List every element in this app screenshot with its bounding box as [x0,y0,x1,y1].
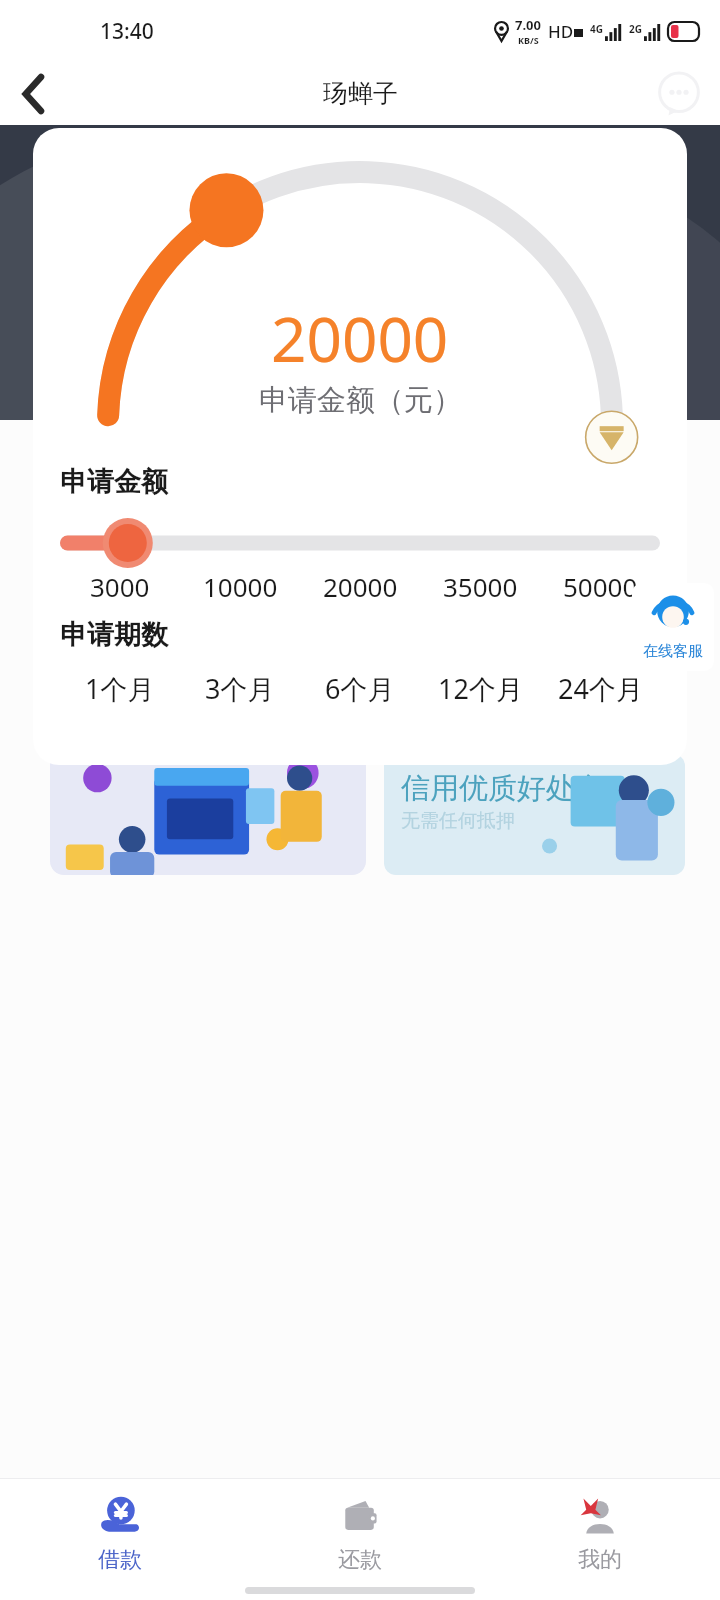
button[interactable] [60,523,660,563]
staticText: 高效 简单 安全 [218,283,424,323]
staticText: 信用优质好处多 [401,770,604,807]
button[interactable]: 1分钟认证 [50,620,366,875]
button[interactable]: 24个月 [540,670,660,707]
button[interactable]: 信用优质好处多 [384,754,685,875]
button[interactable]: 去还款 [58,469,662,545]
staticText: 随时借还 [230,183,490,261]
button[interactable]: 3个月 [180,670,300,707]
staticText: 3000 [90,569,150,604]
staticText: 2G [629,22,642,36]
staticText: 玚蝉子 [323,78,398,109]
staticText: 申请期数 [60,618,168,652]
button[interactable]: More [652,67,706,121]
button[interactable]: 借款 [0,1494,240,1600]
button[interactable]: 6个月 [300,670,420,707]
staticText: 无需任何抵押 [401,809,515,833]
staticText: 产品亮点 [62,569,178,606]
staticText: 50000 [563,569,638,604]
staticText: 6个月 [325,670,395,707]
staticText: 3个月 [205,670,275,707]
staticText: 7.00 [515,16,541,34]
staticText: 申请金额 [60,465,168,499]
staticText: 10000 [203,569,278,604]
staticText: HD [548,20,574,43]
staticText: 20000 [271,296,449,380]
staticText: 十分钟放款 [72,691,177,717]
staticText: 我的 [578,1546,622,1574]
staticText: 1分钟认证 [72,644,214,686]
staticText: 提前还款，无违约金 [401,675,572,699]
staticText: 还款 [338,1546,382,1574]
staticText: 13:40 [100,17,154,46]
staticText: 35000 [443,569,518,604]
staticText: 在线客服 [643,642,703,661]
button[interactable]: Back [8,68,60,120]
button[interactable]: 12个月 [420,670,540,707]
staticText: 12个月 [438,670,523,707]
button[interactable]: 随时借款 [384,620,685,740]
staticText: KB/S [518,34,539,46]
staticText: 1个月 [85,670,155,707]
staticText: 借款 [98,1546,142,1574]
button[interactable]: 在线客服 [632,583,714,671]
staticText: 申请金额（元） [259,382,462,419]
staticText: 20000 [323,569,398,604]
staticText: 24个月 [558,670,643,707]
button[interactable]: 我的 [480,1494,720,1600]
staticText: 4G [590,22,603,36]
button[interactable]: 还款 [240,1494,480,1600]
button[interactable]: 1个月 [60,670,180,707]
